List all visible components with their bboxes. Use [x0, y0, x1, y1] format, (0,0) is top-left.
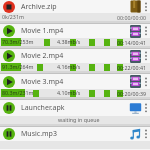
button[interactable]	[144, 50, 148, 62]
staticText: Archive.zip	[21, 2, 57, 12]
staticText: 00:14/00:41	[117, 39, 147, 46]
button[interactable]: Launcher.apk	[0, 100, 150, 116]
staticText: 0k/231m	[2, 13, 24, 20]
button[interactable]	[144, 128, 148, 140]
staticText: Music.mp3	[21, 129, 57, 139]
staticText: Movie 2.mp4	[21, 51, 64, 61]
staticText: 00:22/00:41	[117, 64, 147, 71]
button[interactable]	[144, 1, 148, 13]
button[interactable]: Music.mp3	[0, 127, 150, 141]
staticText: Movie 1.mp4	[21, 26, 64, 36]
button[interactable]	[144, 102, 148, 114]
staticText: 00:00/00:00	[117, 14, 147, 21]
staticText: 80.3m/231m	[2, 89, 34, 96]
button[interactable]	[144, 25, 148, 37]
button[interactable]: Movie 3.mp4	[0, 74, 150, 89]
staticText: 70.3m/253m	[2, 38, 34, 45]
staticText: 91.3m/264m	[2, 63, 34, 70]
button[interactable]: Archive.zip	[0, 0, 150, 13]
staticText: waiting in queue	[58, 116, 100, 123]
staticText: Movie 3.mp4	[21, 77, 64, 87]
button[interactable]: Movie 1.mp4	[0, 24, 150, 38]
button[interactable]	[144, 76, 148, 88]
staticText: 00:20/00:39	[117, 90, 147, 97]
staticText: 4.10mb/s	[57, 89, 81, 96]
staticText: Launcher.apk	[21, 103, 65, 113]
button[interactable]: Movie 2.mp4	[0, 49, 150, 63]
staticText: 4.16mb/s	[57, 63, 81, 70]
staticText: 4.38mb/s	[57, 38, 81, 45]
